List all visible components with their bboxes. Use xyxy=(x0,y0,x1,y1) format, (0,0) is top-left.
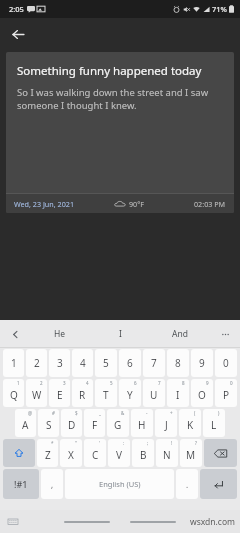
button[interactable]: # xyxy=(38,409,59,437)
staticText: 9 xyxy=(206,380,209,386)
button[interactable]: 6 xyxy=(119,379,141,407)
button[interactable]: 2 xyxy=(26,379,47,407)
staticText: F xyxy=(92,418,98,432)
staticText: M xyxy=(186,448,196,462)
button[interactable]: 0 xyxy=(215,349,237,377)
button[interactable]: $ xyxy=(61,409,82,437)
staticText: !#1 xyxy=(14,478,28,490)
staticText: 7 xyxy=(158,380,161,386)
staticText: L xyxy=(211,418,217,432)
staticText: 0 xyxy=(230,380,233,386)
button[interactable]: 8 xyxy=(167,379,189,407)
button[interactable]: ; xyxy=(132,439,154,467)
staticText: N xyxy=(163,448,171,462)
button[interactable]: 5 xyxy=(95,379,117,407)
staticText: 7 xyxy=(151,356,157,370)
staticText: V xyxy=(116,448,122,462)
staticText: P xyxy=(223,388,230,402)
staticText: & xyxy=(121,410,125,416)
staticText: A xyxy=(22,418,29,432)
staticText: T xyxy=(103,388,109,402)
button[interactable]: 9 xyxy=(191,379,213,407)
staticText: X xyxy=(68,448,74,462)
button[interactable]: He xyxy=(30,320,90,348)
staticText: ? xyxy=(195,440,197,446)
staticText: K xyxy=(187,418,194,432)
button[interactable]: 4 xyxy=(72,349,93,377)
button[interactable]: @ xyxy=(15,409,36,437)
staticText: 2 xyxy=(40,380,43,386)
button[interactable]: 7 xyxy=(143,379,165,407)
staticText: Wed, 23 Jun, 2021 xyxy=(14,199,74,209)
staticText: E xyxy=(57,388,63,402)
button[interactable]: ! xyxy=(156,439,178,467)
staticText: O xyxy=(198,388,206,402)
staticText: _ xyxy=(99,410,101,416)
staticText: Y xyxy=(127,388,133,402)
button[interactable]: 3 xyxy=(49,379,70,407)
button[interactable]: More options xyxy=(210,320,240,348)
button[interactable]: 4 xyxy=(72,379,93,407)
staticText: 1 xyxy=(11,356,17,370)
staticText: Z xyxy=(45,448,51,462)
staticText: # xyxy=(52,410,55,416)
staticText: 2 xyxy=(34,356,40,370)
staticText: R xyxy=(79,388,86,402)
button[interactable]: Shift xyxy=(3,439,35,467)
button[interactable]: Back xyxy=(6,22,30,46)
staticText: : xyxy=(123,440,125,446)
staticText: He xyxy=(54,328,66,340)
staticText: 1 xyxy=(17,380,20,386)
staticText: $ xyxy=(75,410,78,416)
button[interactable]: English (US) xyxy=(65,469,174,499)
button[interactable]: 0 xyxy=(215,379,237,407)
button[interactable]: , xyxy=(41,469,63,499)
button[interactable]: Something funny happened today xyxy=(6,52,234,213)
button[interactable]: 9 xyxy=(191,349,213,377)
staticText: ' xyxy=(99,440,101,446)
button[interactable]: 7 xyxy=(143,349,165,377)
button[interactable]: _ xyxy=(84,409,105,437)
staticText: ; xyxy=(147,440,149,446)
staticText: 3 xyxy=(63,380,66,386)
button[interactable]: Enter xyxy=(200,469,237,499)
button[interactable]: Backspace xyxy=(204,439,237,467)
staticText: . xyxy=(186,479,189,490)
staticText: S xyxy=(46,418,52,432)
button[interactable]: & xyxy=(107,409,129,437)
button[interactable]: 5 xyxy=(95,349,117,377)
staticText: 9 xyxy=(199,356,205,370)
button[interactable]: - xyxy=(131,409,153,437)
button[interactable]: !#1 xyxy=(3,469,39,499)
button[interactable]: + xyxy=(155,409,177,437)
button[interactable]: 1 xyxy=(3,349,24,377)
button[interactable]: . xyxy=(176,469,198,499)
button[interactable]: Previous suggestions xyxy=(0,320,30,348)
button[interactable]: 6 xyxy=(119,349,141,377)
button[interactable]: 1 xyxy=(3,379,24,407)
staticText: @ xyxy=(28,410,33,416)
staticText: English (US) xyxy=(99,479,141,489)
staticText: Q xyxy=(10,388,18,402)
button[interactable]: I xyxy=(90,320,150,348)
button[interactable]: ' xyxy=(84,439,106,467)
button[interactable]: And xyxy=(150,320,210,348)
button[interactable]: Hide keyboard xyxy=(6,515,20,529)
button[interactable]: ? xyxy=(180,439,202,467)
button[interactable]: ) xyxy=(203,409,225,437)
button[interactable]: 8 xyxy=(167,349,189,377)
staticText: + xyxy=(170,410,173,416)
button[interactable]: 3 xyxy=(49,349,70,377)
button[interactable]: 2 xyxy=(26,349,47,377)
button[interactable]: : xyxy=(108,439,130,467)
button[interactable]: " xyxy=(60,439,82,467)
staticText: ! xyxy=(171,440,173,446)
staticText: 71% xyxy=(212,4,227,14)
button[interactable]: ( xyxy=(179,409,201,437)
staticText: 6 xyxy=(127,356,133,370)
staticText: And xyxy=(172,328,188,340)
button[interactable]: * xyxy=(37,439,58,467)
staticText: 90°F xyxy=(129,199,145,209)
staticText: 8 xyxy=(175,356,181,370)
staticText: 4 xyxy=(80,356,86,370)
